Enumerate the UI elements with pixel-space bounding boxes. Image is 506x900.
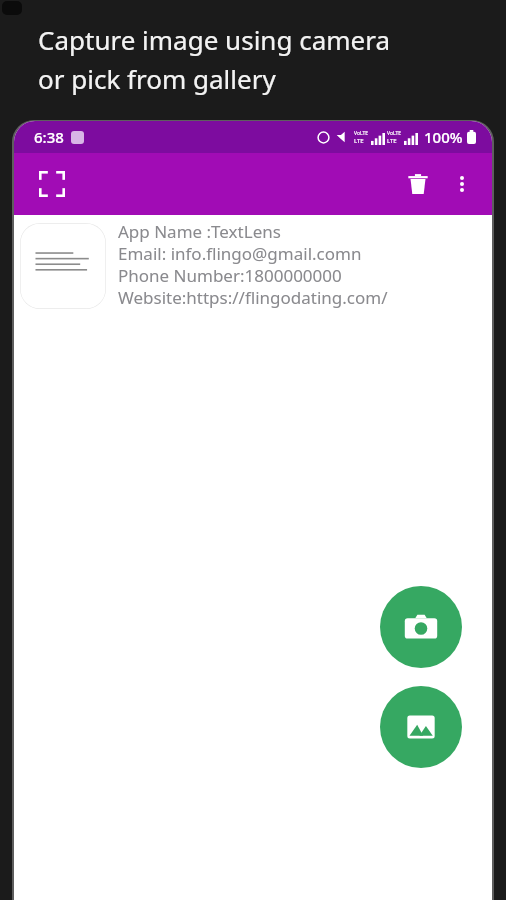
button[interactable]: App Name :TextLens bbox=[14, 215, 492, 318]
staticText: LTE bbox=[387, 137, 397, 145]
staticText: 100% bbox=[424, 127, 463, 147]
button[interactable]: Delete bbox=[396, 162, 440, 206]
button[interactable]: Capture image using camera bbox=[380, 586, 462, 668]
staticText: Phone Number:1800000000 bbox=[118, 264, 342, 286]
staticText: App Name :TextLens bbox=[118, 220, 281, 242]
staticText: Capture image using camera bbox=[38, 22, 391, 57]
staticText: Email: info.flingo@gmail.comn bbox=[118, 242, 362, 264]
button[interactable]: Pick image from gallery bbox=[380, 686, 462, 768]
staticText: Website:https://flingodating.com/ bbox=[118, 286, 388, 308]
staticText: 6:38 bbox=[34, 127, 64, 147]
staticText: VoLTE bbox=[387, 130, 402, 137]
staticText: or pick from gallery bbox=[38, 61, 276, 96]
button[interactable]: Crop bbox=[30, 162, 74, 206]
staticText: LTE bbox=[354, 137, 364, 145]
button[interactable]: More options bbox=[440, 162, 484, 206]
staticText: VoLTE bbox=[354, 130, 369, 137]
